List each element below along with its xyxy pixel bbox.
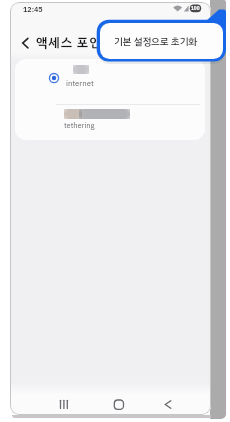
button[interactable] bbox=[18, 34, 36, 52]
button[interactable]: internet bbox=[15, 59, 205, 104]
staticText: 기본 설정으로 초기화 bbox=[114, 34, 198, 49]
button[interactable]: 기본 설정으로 초기화 bbox=[100, 23, 223, 59]
button[interactable] bbox=[108, 394, 130, 415]
staticText: tethering bbox=[64, 120, 95, 131]
staticText: internet bbox=[66, 78, 94, 90]
staticText: 12:45 bbox=[23, 4, 43, 15]
button[interactable] bbox=[54, 394, 76, 415]
staticText: 100 bbox=[191, 5, 200, 12]
staticText: 액세스 포인트 이름 bbox=[36, 33, 143, 52]
button[interactable]: tethering bbox=[15, 105, 205, 140]
button[interactable] bbox=[158, 394, 180, 415]
